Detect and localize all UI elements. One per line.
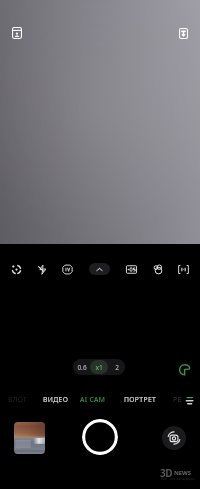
button[interactable]: AI scene detection: [7, 258, 25, 280]
staticText: AI CAM: [80, 395, 106, 404]
button[interactable]: Gallery: [14, 422, 45, 454]
staticText: РЕ: [173, 395, 182, 404]
button[interactable]: Timer: [122, 258, 140, 280]
button[interactable]: РЕ: [173, 392, 182, 406]
staticText: ВЛОГ: [8, 395, 28, 404]
staticText: NEWS: [174, 469, 191, 477]
button[interactable]: Take photo: [82, 419, 118, 455]
staticText: ВИДЕО: [43, 395, 69, 404]
button[interactable]: AI CAM: [80, 392, 106, 406]
button[interactable]: ПОРТРЕТ: [124, 392, 157, 406]
staticText: 2: [115, 363, 119, 372]
staticText: ПОРТРЕТ: [124, 395, 157, 404]
button[interactable]: ВЛОГ: [8, 392, 28, 406]
button[interactable]: 2: [108, 359, 125, 375]
button[interactable]: AI enhance: [176, 361, 192, 377]
button[interactable]: x1: [90, 360, 108, 374]
button[interactable]: Flash off: [33, 258, 51, 280]
button[interactable]: More modes: [184, 395, 194, 405]
button[interactable]: ВИДЕО: [43, 392, 69, 406]
staticText: 0.6: [77, 363, 87, 372]
button[interactable]: Watermark: [175, 25, 191, 41]
staticText: Всё, что вы ждали: [161, 476, 195, 481]
button[interactable]: Switch camera: [162, 426, 186, 450]
button[interactable]: HDR: [58, 258, 76, 280]
button[interactable]: Aspect ratio: [174, 258, 192, 280]
staticText: 3D: [160, 466, 173, 480]
button[interactable]: 0.6: [73, 359, 90, 375]
button[interactable]: More settings: [89, 263, 110, 275]
button[interactable]: ID photo mode: [9, 25, 25, 41]
staticText: x1: [95, 363, 103, 372]
button[interactable]: Filters: [149, 258, 167, 280]
